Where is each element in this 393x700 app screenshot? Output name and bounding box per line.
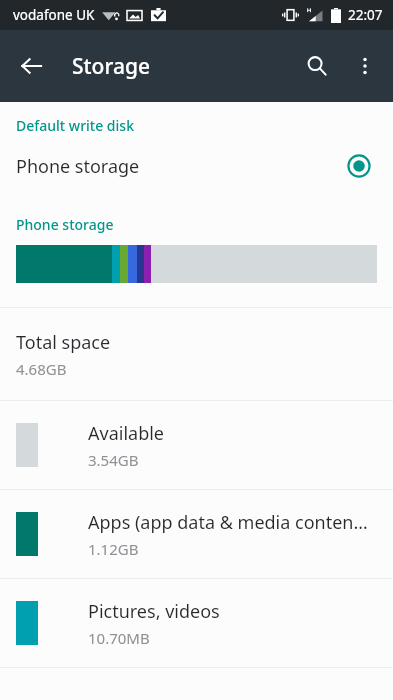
button[interactable]: Phone storage [0, 135, 393, 197]
staticText: Phone storage [16, 154, 140, 179]
staticText: Available [88, 421, 164, 446]
button[interactable]: More options [341, 42, 389, 90]
staticText: 22:07 [348, 6, 383, 24]
staticText: Total space [16, 330, 111, 355]
button[interactable]: Search [293, 42, 341, 90]
button[interactable]: Back [8, 42, 56, 90]
staticText: 3.54GB [88, 450, 139, 470]
staticText: 4.68GB [16, 359, 67, 379]
staticText: Pictures, videos [88, 599, 220, 624]
button[interactable]: Available [0, 401, 393, 489]
staticText: 10.70MB [88, 628, 150, 648]
staticText: Default write disk [16, 116, 134, 135]
staticText: vodafone UK [13, 6, 95, 24]
staticText: Apps (app data & media conten… [88, 510, 368, 535]
staticText: 1.12GB [88, 539, 139, 559]
staticText: Storage [72, 52, 150, 81]
button[interactable]: Apps (app data & media conten… [0, 490, 393, 578]
button[interactable]: Pictures, videos [0, 579, 393, 667]
staticText: Phone storage [16, 215, 114, 234]
button[interactable]: Total space [0, 308, 393, 400]
